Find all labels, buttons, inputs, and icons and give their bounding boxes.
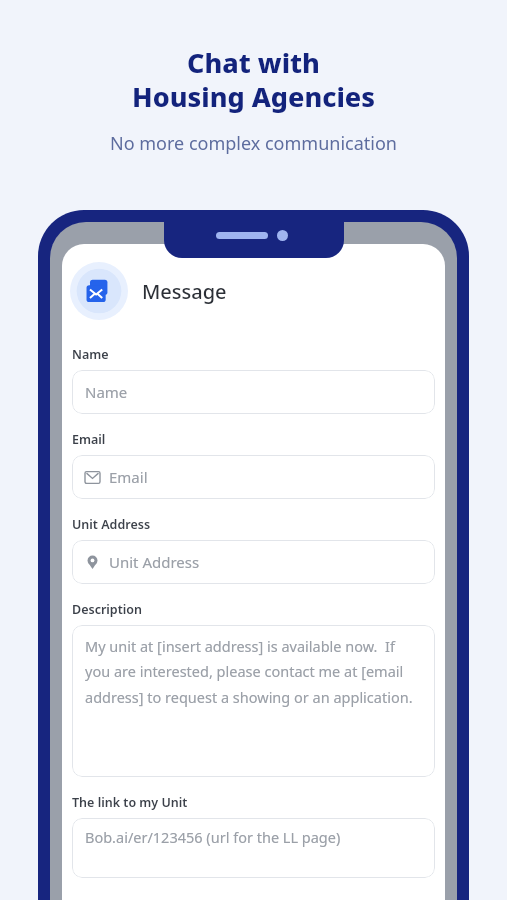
staticText: Description (72, 601, 142, 618)
staticText: No more complex communication (110, 131, 397, 156)
staticText: Unit Address (109, 552, 200, 572)
staticText: Email (109, 467, 148, 487)
staticText: Name (85, 382, 128, 402)
button[interactable]: Bob.ai/er/123456 (url for the LL page) (72, 818, 435, 878)
staticText: The link to my Unit (72, 794, 188, 811)
button[interactable]: Message (62, 262, 445, 320)
button[interactable]: Email (72, 455, 435, 499)
button[interactable]: My unit at [insert address] is available… (72, 625, 435, 777)
staticText: Bob.ai/er/123456 (url for the LL page) (85, 827, 341, 847)
staticText: My unit at [insert address] is available… (85, 636, 422, 708)
staticText: Message (142, 278, 227, 305)
staticText: Email (72, 431, 106, 448)
staticText: Name (72, 346, 109, 363)
button[interactable]: Unit Address (72, 540, 435, 584)
staticText: Unit Address (72, 516, 151, 533)
staticText: Chat with Housing Agencies (132, 44, 375, 115)
other: Message (70, 262, 128, 320)
button[interactable]: Name (72, 370, 435, 414)
